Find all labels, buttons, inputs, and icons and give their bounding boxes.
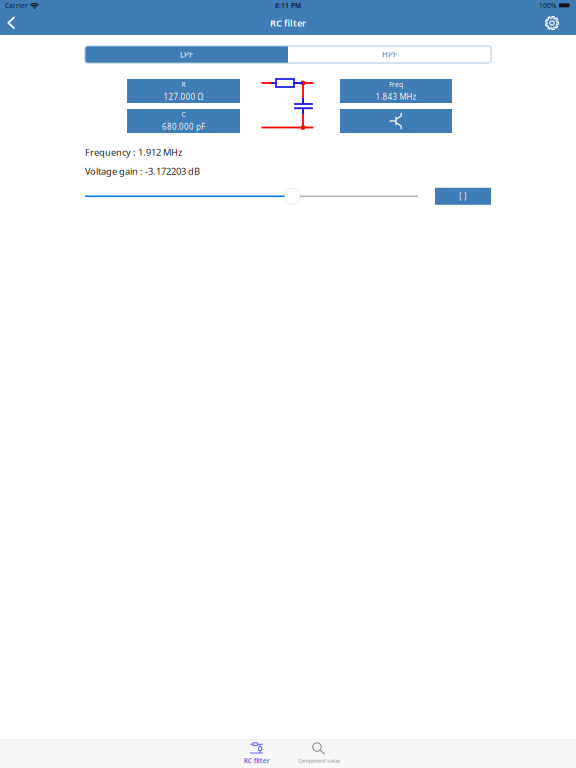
staticText: 127.000 Ω xyxy=(163,91,203,102)
staticText: 6:11 PM xyxy=(275,1,301,10)
button[interactable]: Back xyxy=(1,11,22,35)
staticText: 1.843 MHz xyxy=(375,91,416,102)
staticText: RC filter xyxy=(270,17,306,29)
button[interactable]: R xyxy=(127,79,240,103)
staticText: 100% xyxy=(539,1,557,10)
staticText: 680.000 pF xyxy=(162,121,205,132)
button[interactable]: HPF xyxy=(288,46,491,63)
staticText: Component value xyxy=(298,757,340,764)
staticText: [ ] xyxy=(459,191,467,202)
staticText: Freq xyxy=(389,80,403,89)
button[interactable]: RC filter xyxy=(226,740,288,768)
button[interactable]: Settings xyxy=(541,11,563,35)
staticText: Voltage gain : -3.172203 dB xyxy=(85,165,200,177)
button[interactable]: LPF xyxy=(85,46,288,63)
button[interactable]: C xyxy=(127,109,240,133)
staticText: C xyxy=(181,110,185,119)
button[interactable]: Component value xyxy=(288,740,350,768)
button[interactable]: Freq xyxy=(340,79,452,103)
staticText: LPF xyxy=(180,49,193,60)
button[interactable]: Component list xyxy=(435,188,491,205)
button[interactable]: Transistor xyxy=(340,109,452,133)
staticText: Frequency : 1.912 MHz xyxy=(85,146,182,158)
staticText: RC filter xyxy=(244,756,270,765)
staticText: R xyxy=(181,80,185,89)
staticText: Carrier xyxy=(5,1,28,10)
staticText: HPF xyxy=(382,49,397,60)
